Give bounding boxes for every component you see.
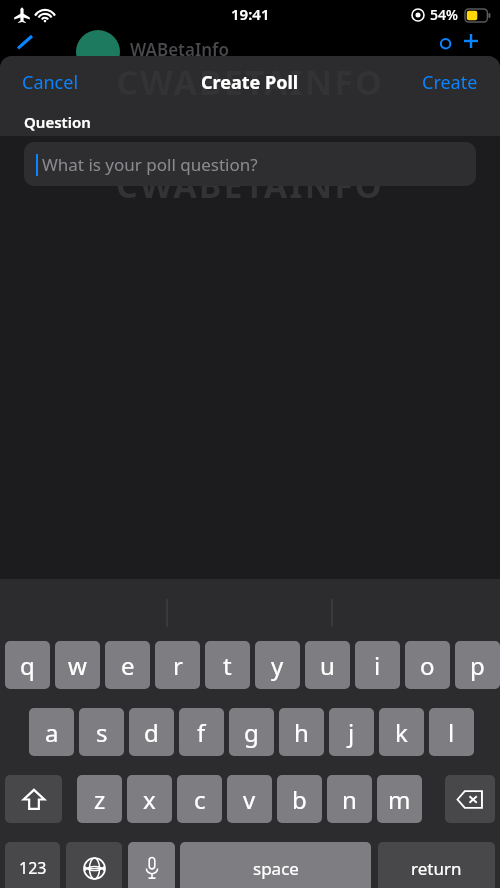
staticText: s [96,716,108,749]
staticText: 54% [430,5,458,24]
staticText: What is your poll question? [42,153,258,176]
button[interactable]: h [279,708,324,756]
staticText: t [223,649,232,682]
button[interactable]: b [277,775,322,823]
button[interactable]: Create [410,62,490,103]
staticText: 123 [19,857,47,879]
staticText: m [388,783,411,816]
staticText: return [411,857,462,880]
button[interactable]: i [355,641,400,689]
button[interactable]: z [77,775,122,823]
staticText: y [271,649,284,682]
button[interactable]: a [29,708,74,756]
staticText: r [173,649,183,682]
button[interactable]: t [205,641,250,689]
button[interactable]: m [377,775,422,823]
button[interactable]: k [379,708,424,756]
staticText: CWABETAINFO [116,162,384,208]
button[interactable]: n [327,775,372,823]
button[interactable]: q [5,641,50,689]
staticText: f [197,716,206,749]
staticText: x [143,783,156,816]
button[interactable]: return [378,842,495,888]
staticText: l [448,716,455,749]
staticText: b [292,783,307,816]
staticText: v [243,783,256,816]
button[interactable]: f [179,708,224,756]
button[interactable]: d [129,708,174,756]
button[interactable]: u [305,641,350,689]
staticText: Question [24,112,91,132]
button[interactable]: 123 [5,842,60,888]
staticText: c [194,783,206,816]
staticText: q [20,649,35,682]
staticText: WABetaInfo [130,38,229,61]
staticText: i [374,649,381,682]
staticText: p [470,649,485,682]
button[interactable]: y [255,641,300,689]
button[interactable]: g [229,708,274,756]
staticText: 19:41 [231,4,270,24]
staticText: a [45,716,59,749]
staticText: CWABETAINFO [116,59,384,105]
button[interactable]: c [177,775,222,823]
button[interactable]: Cancel [10,62,91,103]
staticText: w [68,649,87,682]
staticText: Create [422,70,478,95]
staticText: Create Poll [201,70,299,95]
button[interactable]: w [55,641,100,689]
staticText: z [94,783,106,816]
button[interactable]: Dictate [128,842,175,888]
button[interactable]: space [180,842,371,888]
staticText: o [420,649,435,682]
button[interactable]: o [405,641,450,689]
button[interactable]: s [79,708,124,756]
staticText: g [244,716,259,749]
button[interactable]: v [227,775,272,823]
button[interactable]: Backspace [445,775,495,823]
staticText: n [342,783,357,816]
staticText: space [253,857,299,880]
staticText: Cancel [22,70,79,95]
staticText: d [144,716,159,749]
button[interactable]: What is your poll question? [24,142,476,186]
staticText: j [348,716,355,749]
button[interactable]: j [329,708,374,756]
button[interactable]: p [455,641,500,689]
staticText: e [121,649,135,682]
staticText: u [320,649,335,682]
button[interactable]: Change keyboard language [66,842,122,888]
staticText: h [294,716,309,749]
button[interactable]: x [127,775,172,823]
button[interactable]: Shift [5,775,62,823]
button[interactable]: e [105,641,150,689]
button[interactable]: l [429,708,474,756]
staticText: k [395,716,408,749]
button[interactable]: r [155,641,200,689]
